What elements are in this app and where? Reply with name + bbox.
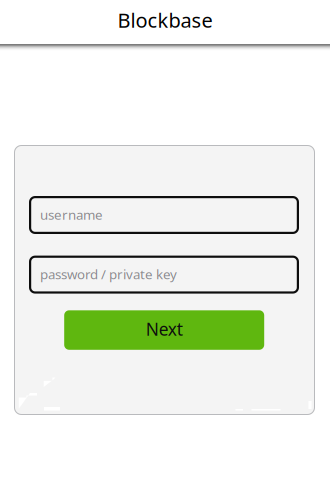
button[interactable]: username [29, 196, 299, 234]
staticText: password / private key [40, 265, 177, 283]
staticText: Blockbase [117, 7, 212, 33]
button[interactable]: Next [64, 310, 264, 350]
staticText: Next [146, 317, 183, 340]
staticText: username [40, 206, 103, 223]
button[interactable]: password / private key [29, 256, 299, 294]
